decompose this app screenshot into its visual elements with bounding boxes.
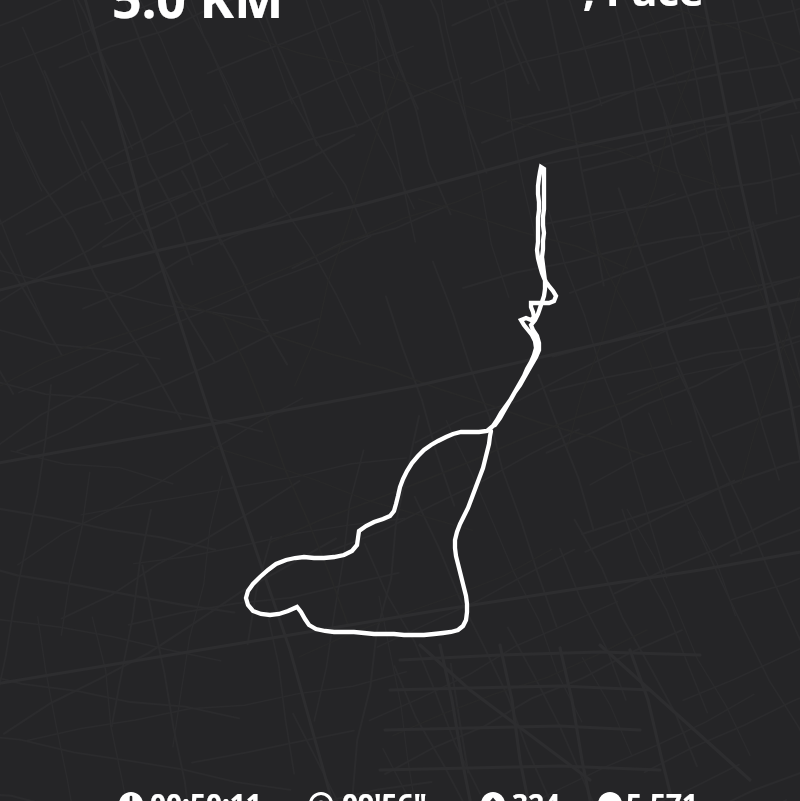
button[interactable]: Steps [595, 791, 739, 801]
staticText: 324 [512, 785, 561, 801]
button[interactable]: Route map [0, 0, 800, 801]
staticText: 5,571 [626, 785, 699, 801]
staticText: 00:50:11 [150, 785, 262, 801]
button[interactable]: Calories [478, 791, 590, 801]
button[interactable]: Average pace [306, 791, 466, 801]
staticText: , Pace [583, 0, 704, 18]
staticText: 09'56" [342, 785, 427, 801]
button[interactable]: Duration [116, 791, 308, 801]
staticText: 5.0 KM [112, 0, 284, 33]
